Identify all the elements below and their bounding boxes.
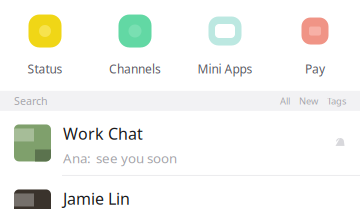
staticText: Work Chat	[63, 123, 143, 144]
button[interactable]: Status	[0, 14, 90, 91]
button[interactable]: New	[290, 95, 318, 107]
staticText: Pay	[305, 61, 325, 77]
staticText: Tags	[327, 95, 346, 107]
button[interactable]: Mini Apps	[180, 14, 270, 91]
staticText: Jamie Lin	[63, 188, 130, 209]
button[interactable]: Jamie Lin	[0, 176, 360, 209]
button[interactable]: Work Chat	[0, 111, 360, 175]
button[interactable]: All	[271, 95, 290, 107]
staticText: Status	[27, 61, 62, 77]
staticText: Mini Apps	[197, 61, 252, 77]
button[interactable]: Channels	[90, 14, 180, 91]
staticText: see you soon	[96, 149, 177, 167]
staticText: Channels	[109, 61, 161, 77]
staticText: Ana:	[63, 149, 91, 167]
staticText: New	[299, 95, 318, 107]
staticText: All	[280, 95, 290, 107]
button[interactable]: Pay	[270, 14, 360, 91]
button[interactable]: Tags	[318, 95, 346, 107]
staticText: Search	[14, 94, 48, 108]
